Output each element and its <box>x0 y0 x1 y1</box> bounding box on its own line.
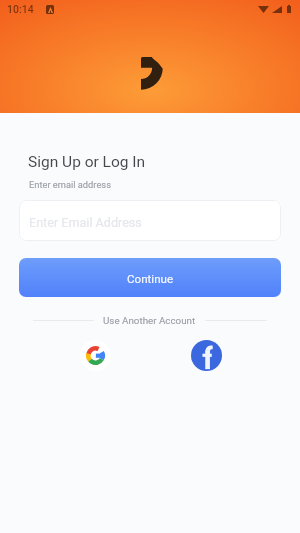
staticText: 10:14 <box>7 3 34 15</box>
button[interactable]: Sign in with Google <box>80 340 111 371</box>
staticText: Continue <box>127 272 174 286</box>
button[interactable]: Continue <box>19 258 281 297</box>
staticText: Enter email address <box>29 179 111 190</box>
button[interactable]: Sign in with Facebook <box>191 340 222 371</box>
button[interactable]: Enter Email Address <box>19 200 281 241</box>
staticText: Sign Up or Log In <box>28 153 146 171</box>
staticText: Enter Email Address <box>29 215 142 230</box>
staticText: Use Another Account <box>103 315 196 326</box>
